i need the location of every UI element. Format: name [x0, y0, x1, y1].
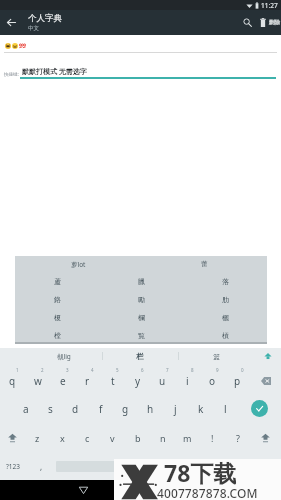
button[interactable]: 肋 [183, 290, 267, 308]
button[interactable]: 9 [200, 364, 225, 394]
button[interactable]: 7 [150, 364, 175, 394]
staticText: ! [211, 432, 214, 444]
button[interactable]: g [113, 394, 138, 423]
button[interactable]: 槻lig [26, 348, 102, 364]
staticText: 0 [241, 367, 244, 373]
staticText: p [234, 374, 241, 388]
staticText: 蘆 [54, 277, 61, 286]
button[interactable]: Enter [238, 394, 281, 423]
staticText: g [122, 402, 129, 416]
staticText: s [48, 402, 53, 416]
button[interactable]: 萝lot [15, 256, 141, 272]
staticText: j [174, 402, 177, 416]
staticText: 欐 [222, 313, 229, 322]
button[interactable]: v [100, 423, 125, 452]
staticText: a [23, 402, 29, 416]
button[interactable]: 臘 [99, 272, 183, 290]
button[interactable]: 蕾 [141, 256, 267, 272]
staticText: 5 [116, 367, 119, 373]
button[interactable]: 蘆 [15, 272, 99, 290]
button[interactable]: m [175, 423, 200, 452]
button[interactable]: 删除 [268, 10, 280, 35]
button[interactable]: n [150, 423, 175, 452]
staticText: z [35, 432, 40, 444]
button[interactable]: 覧 [99, 326, 183, 344]
staticText: v [110, 432, 115, 444]
button[interactable]: ? [225, 423, 250, 452]
staticText: 9 [216, 367, 219, 373]
button[interactable]: . [229, 452, 255, 480]
button[interactable]: c [75, 423, 100, 452]
staticText: d [72, 402, 79, 416]
button[interactable]: 6 [125, 364, 150, 394]
staticText: 欄 [138, 313, 145, 322]
button[interactable]: Back [0, 10, 22, 35]
button[interactable]: h [138, 394, 163, 423]
button[interactable]: f [88, 394, 113, 423]
staticText: ?123 [6, 462, 20, 471]
button[interactable]: x [50, 423, 75, 452]
staticText: 2 [41, 367, 44, 373]
button[interactable]: 勵 [99, 290, 183, 308]
staticText: 槓 [222, 331, 229, 340]
button[interactable]: l [213, 394, 238, 423]
button[interactable]: Shift [0, 423, 25, 452]
button[interactable]: 0 [225, 364, 250, 394]
staticText: 榎 [54, 313, 61, 322]
button[interactable]: 鉻 [15, 290, 99, 308]
button[interactable]: Search [237, 10, 257, 35]
button[interactable]: b [125, 423, 150, 452]
staticText: 篮 [213, 352, 220, 361]
staticText: l [224, 402, 227, 416]
button[interactable]: Shift [250, 423, 281, 452]
button[interactable]: 1 [0, 364, 25, 394]
button[interactable]: 4 [75, 364, 100, 394]
staticText: i [186, 374, 189, 388]
button[interactable]: 栏 [102, 348, 178, 364]
button[interactable]: Emoji [255, 452, 281, 480]
button[interactable]: a [13, 394, 38, 423]
button[interactable]: 5 [100, 364, 125, 394]
staticText: e [60, 374, 66, 388]
staticText: m [183, 432, 192, 444]
button[interactable]: Space [56, 452, 229, 480]
button[interactable]: ! [200, 423, 225, 452]
button[interactable]: d [63, 394, 88, 423]
button[interactable]: s [38, 394, 63, 423]
button[interactable]: 3 [50, 364, 75, 394]
button[interactable]: 欐 [183, 308, 267, 326]
staticText: 6 [141, 367, 144, 373]
button[interactable]: z [25, 423, 50, 452]
staticText: h [147, 402, 154, 416]
button[interactable]: Expand candidates [254, 348, 281, 364]
staticText: 4007787878.COM [157, 485, 258, 500]
button[interactable]: 樘 [15, 326, 99, 344]
staticText: 覧 [138, 331, 145, 340]
button[interactable]: 欄 [99, 308, 183, 326]
button[interactable]: Backspace [250, 364, 281, 394]
button[interactable]: Delete [257, 10, 269, 35]
button[interactable]: , [26, 452, 56, 480]
staticText: 鉻 [54, 295, 61, 304]
staticText: t [111, 374, 115, 388]
staticText: q [9, 374, 16, 388]
button[interactable]: 榎 [15, 308, 99, 326]
staticText: c [85, 432, 90, 444]
button[interactable]: 8 [175, 364, 200, 394]
button[interactable]: k [188, 394, 213, 423]
staticText: w [34, 374, 42, 388]
staticText: 快捷键: [4, 71, 19, 77]
staticText: r [85, 374, 90, 388]
button[interactable]: 2 [25, 364, 50, 394]
button[interactable]: 落 [183, 272, 267, 290]
staticText: 臘 [138, 277, 145, 286]
staticText: y [135, 374, 141, 388]
button[interactable]: ?123 [0, 452, 26, 480]
button[interactable]: 篮 [178, 348, 254, 364]
button[interactable]: 槓 [183, 326, 267, 344]
button[interactable]: j [163, 394, 188, 423]
staticText: 默默打模式 无需选字 [22, 67, 87, 77]
button[interactable]: Hide keyboard [74, 481, 92, 499]
staticText: 萝lot [71, 260, 86, 269]
